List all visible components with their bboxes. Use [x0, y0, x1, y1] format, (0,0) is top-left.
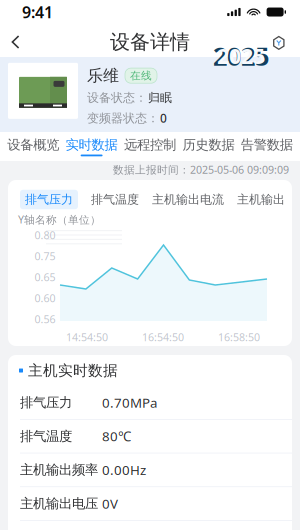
staticText: Y轴名称（单位）	[18, 212, 101, 227]
button[interactable]: 主机输出	[237, 192, 285, 207]
staticText: 2025	[213, 39, 269, 73]
button[interactable]: 设备概览	[4, 132, 62, 161]
staticText: 历史数据	[182, 137, 234, 153]
button[interactable]: 告警数据	[238, 132, 296, 161]
staticText: 主机输出电压	[20, 495, 98, 512]
staticText: 0.00Hz	[102, 461, 146, 479]
staticText: 设备状态：	[87, 90, 147, 105]
staticText: 16:54:50	[142, 330, 184, 344]
button[interactable]: 主机输出电流	[152, 192, 224, 207]
staticText: 变频器状态：	[87, 111, 159, 125]
staticText: 0.75	[34, 249, 55, 263]
staticText: 远程控制	[124, 137, 176, 153]
button[interactable]: Tools	[257, 25, 300, 58]
staticText: 主机实时数据	[28, 361, 118, 379]
button[interactable]: 远程控制	[121, 132, 179, 161]
button[interactable]: 排气温度	[91, 192, 139, 207]
staticText: 0V	[102, 495, 118, 512]
staticText: 设备概览	[7, 137, 59, 153]
button[interactable]: 排气压力	[20, 190, 78, 209]
staticText: 在线	[130, 69, 152, 82]
staticText: 80℃	[102, 427, 131, 445]
staticText: 乐维	[87, 66, 119, 85]
staticText: 0.56	[34, 312, 55, 326]
staticText: 9:41	[22, 1, 53, 23]
staticText: 排气压力	[20, 394, 72, 411]
button[interactable]: 实时数据	[62, 132, 121, 161]
staticText: 归眠	[148, 90, 172, 105]
staticText: 告警数据	[241, 137, 293, 153]
staticText: 主机输出频率	[20, 462, 98, 478]
button[interactable]: Back	[0, 26, 36, 58]
staticText: 0.60	[34, 291, 55, 305]
staticText: 0.80	[34, 228, 55, 242]
staticText: 14:54:50	[66, 330, 108, 344]
staticText: 16:58:50	[218, 330, 260, 344]
staticText: 0	[160, 110, 167, 126]
staticText: 2025	[217, 42, 265, 70]
staticText: 数据上报时间：2025-05-06 09:09:09	[113, 162, 289, 177]
staticText: 主机输出电流	[152, 192, 224, 207]
staticText: 实时数据	[66, 137, 118, 153]
staticText: 主机输出	[237, 192, 285, 207]
staticText: 0.70MPa	[102, 394, 157, 411]
button[interactable]: 历史数据	[179, 132, 238, 161]
staticText: 设备详情	[110, 30, 190, 54]
staticText: 排气温度	[20, 428, 72, 444]
staticText: 0.65	[34, 270, 55, 284]
staticText: 排气温度	[91, 192, 139, 207]
staticText: 排气压力	[25, 192, 73, 207]
